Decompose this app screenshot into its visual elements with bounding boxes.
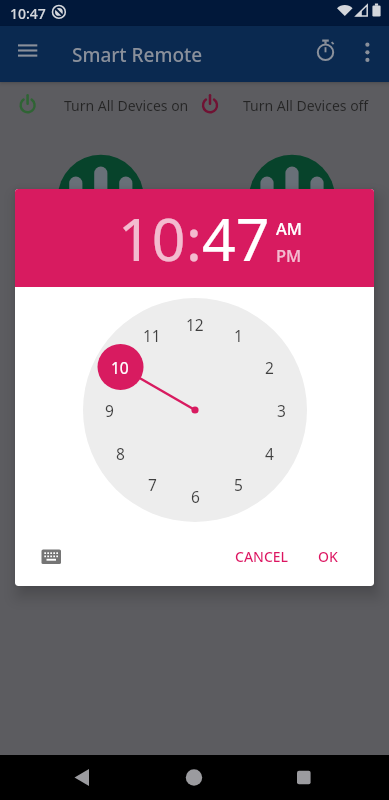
staticText: CANCEL [235,547,289,566]
button[interactable] [282,755,327,800]
staticText: 3 [277,400,286,420]
staticText: 6 [191,486,200,506]
button[interactable]: 47 [202,198,270,278]
button[interactable] [172,755,217,800]
button[interactable] [310,40,340,70]
staticText: 4 [265,443,274,463]
button[interactable] [33,542,69,572]
button[interactable]: OK [307,543,349,569]
staticText: Turn All Devices on [64,96,189,115]
staticText: 1 [234,325,243,345]
staticText: Smart Remote [72,42,203,68]
staticText: : [186,198,202,278]
staticText: 9 [105,400,114,420]
button[interactable] [12,88,192,120]
button[interactable]: AM [272,217,306,237]
button[interactable] [354,40,384,70]
button[interactable]: PM [272,244,306,264]
button[interactable] [196,88,376,120]
staticText: 5 [234,474,243,494]
staticText: OK [318,547,338,566]
staticText: 11 [143,325,161,345]
staticText: 12 [186,314,204,334]
staticText: 10:47 [10,4,46,23]
staticText: AM [276,217,302,237]
button[interactable]: CANCEL [234,543,289,569]
staticText: 10 [118,198,186,278]
staticText: 47 [202,198,270,278]
staticText: 7 [148,474,157,494]
button[interactable] [60,755,105,800]
button[interactable] [10,42,50,68]
staticText: PM [276,244,302,264]
staticText: 8 [116,443,125,463]
staticText: 10 [111,357,129,377]
staticText: Turn All Devices off [243,96,369,115]
staticText: 2 [265,357,274,377]
button[interactable] [12,88,192,120]
